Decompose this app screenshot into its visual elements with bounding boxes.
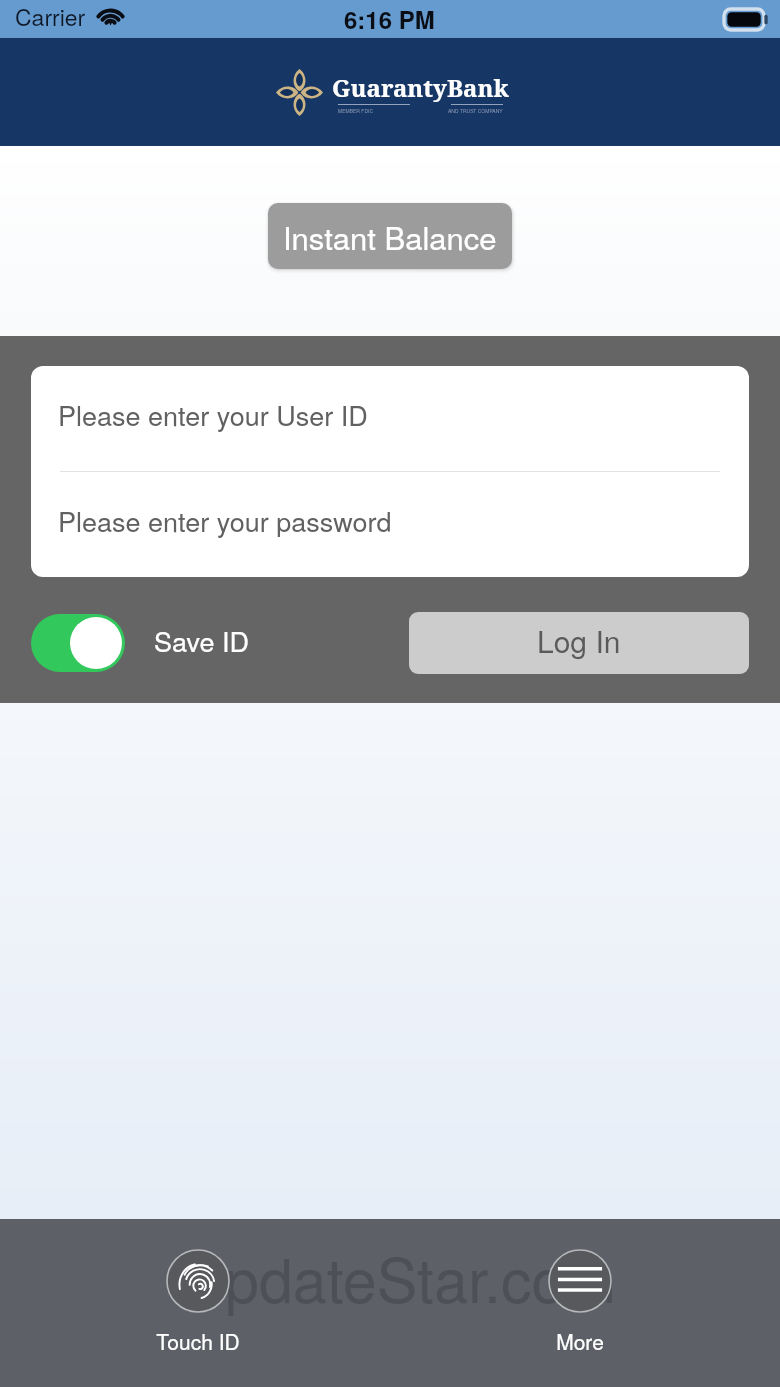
staticText: pdateStar.com [225, 1233, 617, 1320]
staticText: Log In [537, 619, 621, 662]
staticText: Please enter your password [58, 501, 392, 540]
button[interactable]: Touch ID [152, 1245, 244, 1356]
button[interactable]: Save ID toggle [31, 614, 125, 672]
staticText: Please enter your User ID [58, 395, 368, 434]
staticText: Touch ID [156, 1326, 240, 1356]
button[interactable]: Instant Balance [268, 203, 512, 269]
staticText: Instant Balance [283, 214, 497, 258]
staticText: Save ID [154, 621, 249, 660]
button[interactable]: Log In [409, 612, 749, 674]
button[interactable]: Please enter your password [31, 472, 749, 577]
staticText: 6:16 PM [344, 2, 435, 36]
other: More [548, 1249, 612, 1313]
button[interactable]: More [534, 1245, 626, 1356]
staticText: More [556, 1326, 604, 1356]
other: Touch ID [166, 1249, 230, 1313]
staticText: Carrier [15, 0, 86, 33]
staticText: AND TRUST COMPANY [448, 107, 503, 114]
button[interactable]: Please enter your User ID [31, 366, 749, 471]
staticText: GuarantyBank [332, 71, 509, 104]
staticText: MEMBER FDIC [338, 107, 374, 114]
